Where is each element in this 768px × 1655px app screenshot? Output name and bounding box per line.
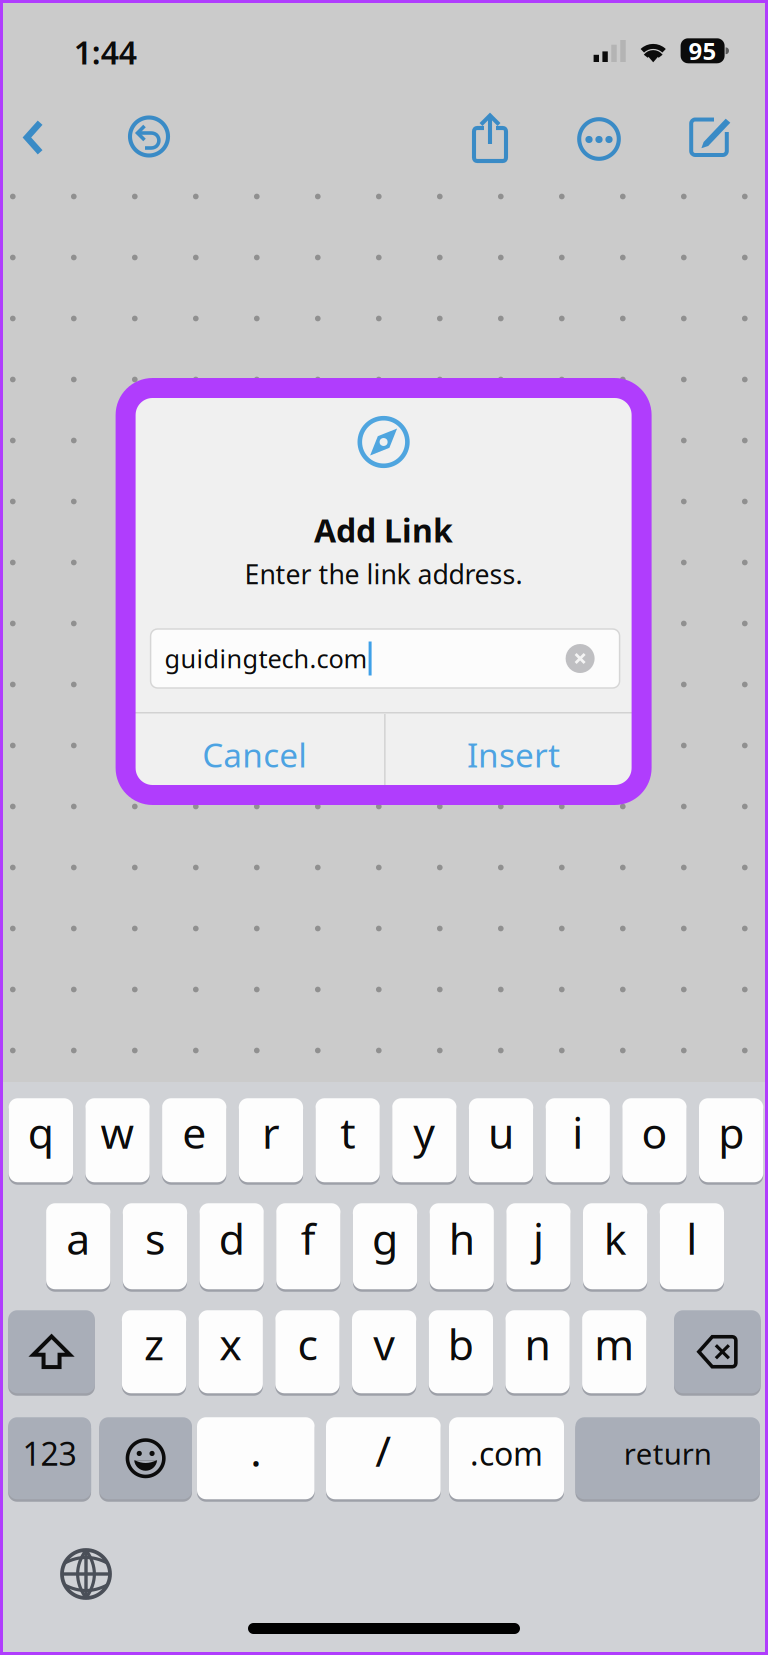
staticText: j [533,1210,544,1267]
button[interactable]: h [430,1202,494,1290]
button[interactable]: u [469,1097,533,1183]
button[interactable]: Insert [386,714,642,795]
staticText: v [373,1315,395,1372]
button[interactable]: Cancel [126,714,384,795]
button[interactable]: m [582,1309,646,1394]
staticText: Insert [467,732,560,777]
button[interactable]: l [660,1202,724,1290]
button[interactable]: t [315,1097,380,1183]
staticText: / [375,1422,391,1479]
button[interactable]: o [622,1097,687,1183]
staticText: a [66,1210,90,1267]
staticText: p [718,1104,744,1161]
staticText: x [219,1315,242,1372]
button[interactable]: q [9,1097,73,1183]
button[interactable]: r [239,1097,303,1183]
staticText: return [624,1434,712,1473]
button[interactable]: g [353,1202,417,1290]
staticText: d [219,1210,245,1267]
staticText: z [144,1315,164,1372]
staticText: r [262,1104,280,1161]
staticText: m [594,1315,634,1372]
staticText: n [524,1315,550,1372]
button[interactable]: Share [471,113,513,165]
button[interactable]: j [506,1202,571,1290]
button[interactable]: Back [23,119,43,155]
button[interactable]: v [352,1309,416,1394]
button[interactable]: i [546,1097,610,1183]
staticText: Cancel [202,732,307,777]
staticText: t [340,1104,355,1161]
button[interactable]: d [199,1202,264,1290]
button[interactable]: b [429,1309,493,1394]
button[interactable]: e [162,1097,226,1183]
staticText: 1:44 [74,31,137,73]
staticText: b [448,1315,474,1372]
staticText: q [28,1104,54,1161]
staticText: y [413,1104,435,1161]
button[interactable]: Delete [674,1309,761,1394]
staticText: guidingtech.com [165,642,368,675]
button[interactable]: Undo [127,114,171,158]
button[interactable]: x [199,1309,263,1394]
button[interactable]: p [699,1097,763,1183]
staticText: o [641,1104,667,1161]
button[interactable]: Shift [8,1309,95,1394]
button[interactable]: n [505,1309,570,1394]
staticText: h [449,1210,475,1267]
staticText: u [488,1104,514,1161]
button[interactable]: y [392,1097,456,1183]
button[interactable]: More [576,116,622,162]
staticText: w [101,1104,135,1161]
staticText: Add Link [314,509,453,551]
button[interactable]: c [275,1309,340,1394]
staticText: i [572,1104,583,1161]
staticText: f [301,1210,316,1267]
staticText: e [182,1104,206,1161]
staticText: k [604,1210,627,1267]
button[interactable]: . [197,1416,315,1500]
staticText: 123 [23,1432,77,1474]
staticText: . [250,1422,261,1479]
staticText: s [145,1210,165,1267]
staticText: .com [470,1432,543,1474]
staticText: 95 [689,35,717,67]
staticText: c [297,1315,317,1372]
button[interactable]: Compose [689,114,733,158]
button[interactable]: / [326,1416,441,1500]
button[interactable]: f [276,1202,340,1290]
button[interactable]: z [122,1309,186,1394]
button[interactable]: 123 [8,1416,91,1500]
button[interactable]: .com [449,1416,564,1500]
button[interactable]: k [583,1202,647,1290]
button[interactable]: return [575,1416,760,1500]
staticText: g [372,1210,398,1267]
button[interactable]: w [85,1097,150,1183]
button[interactable]: Emoji [99,1416,192,1500]
button[interactable]: s [123,1202,187,1290]
staticText: l [686,1210,697,1267]
staticText: Enter the link address. [245,556,523,592]
button[interactable]: a [46,1202,110,1290]
button[interactable]: Next keyboard [60,1548,112,1600]
